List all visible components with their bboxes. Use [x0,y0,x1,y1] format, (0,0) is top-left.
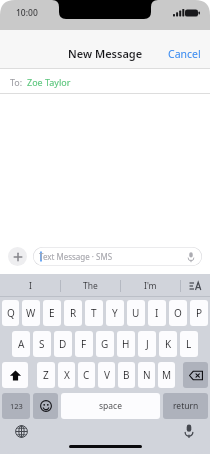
button[interactable]: Emoji [33,393,58,419]
staticText: C [83,368,90,382]
button[interactable]: I [148,300,166,326]
button[interactable]: space [61,393,160,419]
button[interactable]: K [159,331,177,357]
button[interactable]: R [64,300,82,326]
staticText: X [64,368,70,382]
button[interactable]: J [138,331,156,357]
staticText: O [174,306,182,320]
button[interactable]: N [138,362,155,388]
button[interactable]: B [118,362,135,388]
staticText: space [99,400,122,412]
staticText: 123 [10,401,23,411]
staticText: V [104,368,110,382]
button[interactable]: The [60,274,120,297]
staticText: K [165,337,172,351]
staticText: Cancel [168,47,201,61]
staticText: Zoe Taylor [27,76,71,88]
button[interactable]: Shift [2,362,28,388]
button[interactable]: Q [2,300,19,326]
button[interactable]: X [58,362,75,388]
button[interactable]: I [0,274,60,297]
button[interactable]: H [117,331,135,357]
button[interactable]: Text Message · SMS [33,247,202,266]
button[interactable]: A [12,331,30,357]
staticText: R [70,306,77,320]
button[interactable]: Change keyboard [13,423,29,439]
button[interactable]: Cancel [159,40,210,68]
button[interactable]: L [180,331,198,357]
button[interactable]: Predictive text [180,274,210,297]
staticText: F [81,337,87,351]
button[interactable]: W [22,300,40,326]
staticText: P [196,306,203,320]
staticText: U [132,306,140,320]
button[interactable]: E [43,300,61,326]
button[interactable]: Dictate [185,251,197,263]
button[interactable]: F [75,331,93,357]
button[interactable]: 123 [2,393,30,419]
staticText: N [143,368,151,382]
button[interactable]: G [96,331,114,357]
staticText: T [91,306,97,320]
staticText: Z [43,368,49,382]
button[interactable]: Dictate [181,423,197,439]
button[interactable]: S [33,331,51,357]
button[interactable]: Backspace [183,362,208,388]
button[interactable]: D [54,331,72,357]
staticText: H [122,337,130,351]
staticText: S [39,337,45,351]
staticText: E [49,306,55,320]
staticText: 10:00 [16,7,38,19]
button[interactable]: To: [0,69,210,94]
button[interactable]: M [158,362,175,388]
staticText: I'm [144,280,157,292]
button[interactable]: Z [37,362,55,388]
staticText: A [18,337,25,351]
button[interactable]: V [98,362,115,388]
button[interactable]: O [169,300,187,326]
staticText: J [146,337,149,351]
button[interactable]: C [78,362,95,388]
staticText: B [123,368,130,382]
button[interactable]: Add attachment [8,247,27,266]
staticText: To: [10,76,23,88]
staticText: The [83,280,98,292]
staticText: New Message [68,46,143,61]
staticText: L [186,337,192,351]
staticText: I [155,306,159,320]
staticText: G [101,337,109,351]
staticText: return [173,400,199,412]
staticText: I [29,280,32,292]
button[interactable]: return [163,393,208,419]
button[interactable]: P [190,300,208,326]
button[interactable]: U [127,300,145,326]
staticText: Q [7,306,15,320]
staticText: W [26,306,36,320]
button[interactable]: T [85,300,103,326]
button[interactable]: I'm [120,274,180,297]
staticText: D [59,337,67,351]
staticText: M [162,368,172,382]
staticText: Text Message · SMS [39,251,113,262]
staticText: Y [112,306,118,320]
button[interactable]: Y [106,300,124,326]
